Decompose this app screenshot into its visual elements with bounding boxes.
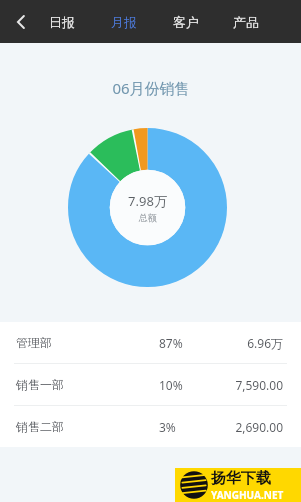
staticText: 总额 <box>139 212 157 223</box>
staticText: 06月份销售 <box>112 78 190 98</box>
staticText: 10% <box>159 377 183 393</box>
button[interactable]: 月报 <box>108 8 140 36</box>
staticText: 2,690.00 <box>235 419 283 435</box>
staticText: 6.96万 <box>247 335 283 351</box>
button[interactable]: 销售一部 <box>0 364 301 405</box>
staticText: 客户 <box>173 14 199 30</box>
button[interactable]: 客户 <box>170 8 202 36</box>
button[interactable]: 销售二部 <box>0 406 301 447</box>
staticText: 销售一部 <box>16 377 64 392</box>
button[interactable]: Back <box>4 5 38 39</box>
staticText: YANGHUA.NET <box>211 488 284 502</box>
staticText: 3% <box>159 419 176 435</box>
staticText: 管理部 <box>16 335 52 350</box>
button[interactable]: 产品 <box>230 8 262 36</box>
staticText: 扬华下载 <box>211 469 271 488</box>
staticText: 日报 <box>49 14 75 30</box>
staticText: 销售二部 <box>16 419 64 434</box>
staticText: 月报 <box>111 14 137 30</box>
staticText: 7,590.00 <box>235 377 283 393</box>
staticText: 87% <box>159 335 183 351</box>
button[interactable]: 日报 <box>46 8 78 36</box>
staticText: 产品 <box>233 14 259 30</box>
staticText: 7.98万 <box>128 192 167 210</box>
button[interactable]: 管理部 <box>0 322 301 363</box>
